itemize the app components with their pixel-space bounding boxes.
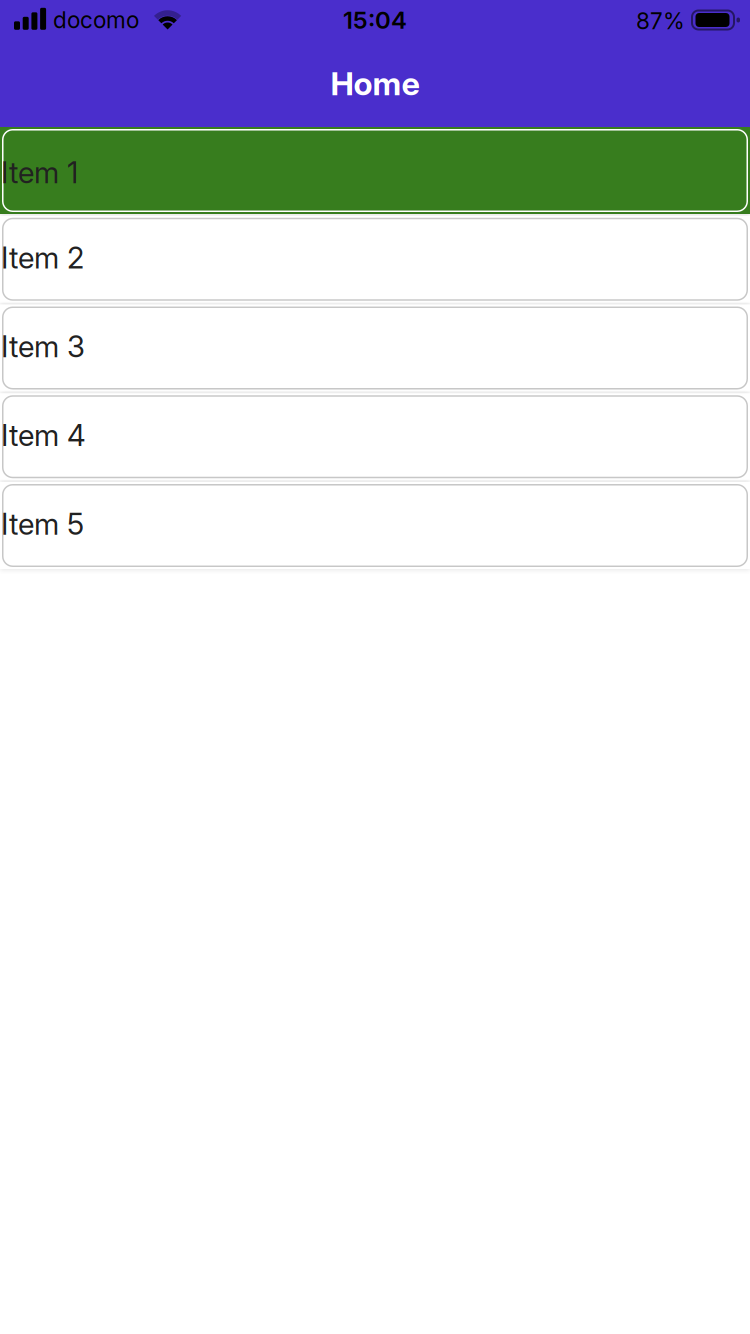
staticText: Item 2 — [1, 240, 84, 275]
button[interactable]: Item 2 — [0, 216, 750, 303]
button[interactable]: Item 4 — [0, 393, 750, 480]
button[interactable]: Item 5 — [0, 482, 750, 569]
button[interactable]: Item 3 — [0, 304, 750, 391]
staticText: 15:04 — [343, 6, 407, 34]
staticText: Item 3 — [1, 329, 85, 364]
staticText: Item 5 — [1, 507, 84, 541]
staticText: Item 1 — [1, 155, 78, 190]
staticText: 87% — [636, 8, 685, 34]
staticText: Item 4 — [1, 418, 86, 452]
staticText: docomo — [53, 7, 139, 33]
staticText: Home — [330, 65, 419, 102]
button[interactable]: Item 1 — [0, 127, 750, 214]
